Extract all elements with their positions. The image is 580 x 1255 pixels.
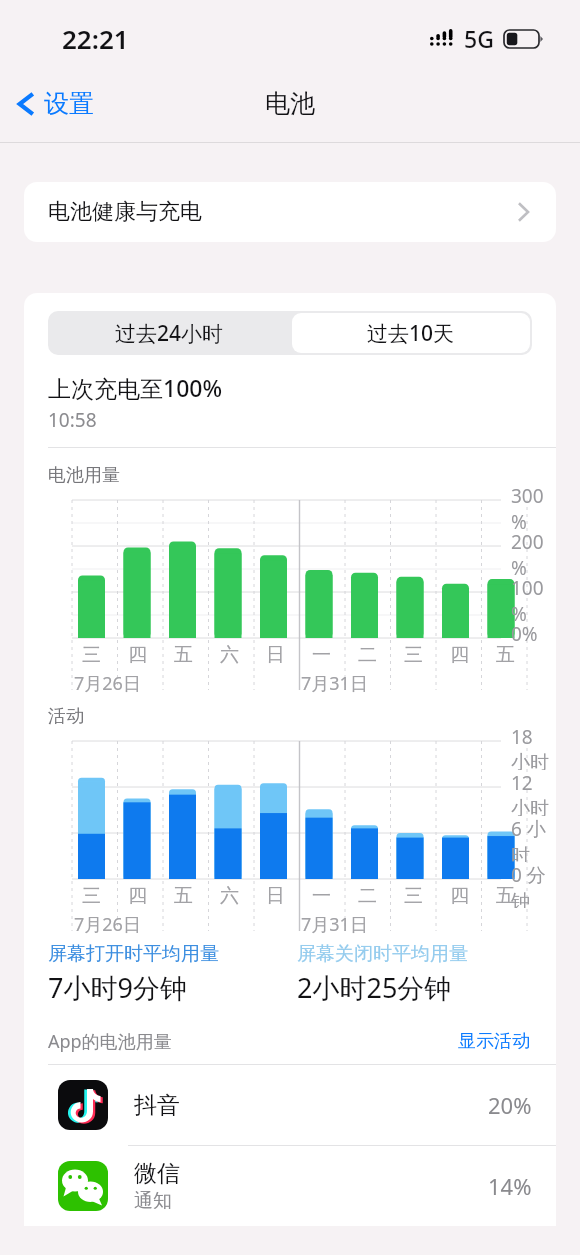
staticText: 300% <box>511 483 556 529</box>
staticText: 二 <box>354 643 381 667</box>
staticText: 上次充电至100% <box>48 372 223 403</box>
staticText: 屏幕关闭时平均用量 <box>297 942 468 966</box>
button[interactable]: 抖音 <box>24 1065 556 1145</box>
staticText: 五 <box>170 884 197 908</box>
staticText: 2小时25分钟 <box>297 969 452 1006</box>
staticText: 二 <box>354 884 381 908</box>
staticText: 五 <box>492 643 519 667</box>
staticText: 日 <box>262 643 289 667</box>
staticText: 200% <box>511 529 556 575</box>
staticText: 过去24小时 <box>115 319 224 348</box>
staticText: 四 <box>124 884 151 908</box>
staticText: 0 分钟 <box>511 862 556 908</box>
button[interactable]: 微信 <box>24 1146 556 1226</box>
staticText: 设置 <box>44 88 94 119</box>
other: 微信 <box>58 1161 108 1211</box>
staticText: 六 <box>216 884 243 908</box>
button[interactable]: 过去24小时 <box>48 311 290 355</box>
staticText: 四 <box>124 643 151 667</box>
staticText: 6 小时 <box>511 816 556 862</box>
staticText: 五 <box>492 884 519 908</box>
staticText: 微信 <box>134 1159 180 1188</box>
button[interactable]: 显示活动 <box>456 1028 532 1055</box>
staticText: 7月31日 <box>301 912 368 937</box>
staticText: 一 <box>308 643 335 667</box>
staticText: 三 <box>78 643 105 667</box>
staticText: 日 <box>262 884 289 908</box>
button[interactable]: 电池健康与充电 <box>24 182 556 242</box>
button[interactable]: 设置 <box>8 82 102 125</box>
staticText: 电池 <box>265 88 315 119</box>
staticText: 22:21 <box>62 21 129 56</box>
staticText: 电池健康与充电 <box>48 198 202 226</box>
staticText: 三 <box>400 884 427 908</box>
staticText: App的电池用量 <box>48 1029 172 1054</box>
staticText: 显示活动 <box>458 1030 530 1053</box>
staticText: 抖音 <box>134 1091 180 1120</box>
staticText: 六 <box>216 643 243 667</box>
staticText: 7月26日 <box>74 912 141 937</box>
staticText: 7月26日 <box>74 671 141 696</box>
staticText: 活动 <box>48 705 84 728</box>
staticText: 五 <box>170 643 197 667</box>
staticText: 7小时9分钟 <box>48 969 187 1006</box>
staticText: 14% <box>488 1171 532 1201</box>
staticText: 三 <box>78 884 105 908</box>
staticText: 屏幕打开时平均用量 <box>48 942 219 966</box>
staticText: 四 <box>446 884 473 908</box>
staticText: 四 <box>446 643 473 667</box>
staticText: 通知 <box>134 1189 172 1213</box>
staticText: 18 小时 <box>511 724 556 770</box>
staticText: 5G <box>464 23 494 54</box>
button[interactable]: 过去10天 <box>292 313 530 353</box>
staticText: 100% <box>511 575 556 621</box>
staticText: 三 <box>400 643 427 667</box>
staticText: 一 <box>308 884 335 908</box>
staticText: 12 小时 <box>511 770 556 816</box>
staticText: 10:58 <box>48 407 97 433</box>
staticText: 过去10天 <box>367 319 455 348</box>
staticText: 电池用量 <box>48 464 120 487</box>
staticText: 0% <box>511 621 538 647</box>
other: 抖音 <box>58 1080 108 1130</box>
staticText: 20% <box>488 1090 532 1120</box>
staticText: 7月31日 <box>301 671 368 696</box>
